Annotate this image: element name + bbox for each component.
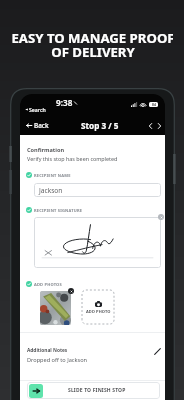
staticText: Search	[29, 106, 46, 113]
staticText: SLIDE TO FINISH STOP	[68, 387, 126, 394]
staticText: ADD PHOTOS	[34, 282, 62, 287]
button[interactable]: Jackson	[34, 183, 161, 197]
staticText: Additional Notes	[27, 347, 68, 354]
staticText: Jackson	[39, 186, 63, 195]
button[interactable]: Previous stop	[146, 120, 155, 132]
button[interactable]: Additional Notes	[20, 347, 165, 364]
staticText: Confirmation	[27, 146, 65, 154]
staticText: 9:38	[56, 97, 73, 108]
button[interactable]: SLIDE TO FINISH STOP	[27, 382, 160, 399]
button[interactable]: Signature pad	[34, 217, 161, 268]
staticText: Back	[34, 121, 49, 130]
button[interactable]: Back	[23, 117, 52, 134]
staticText: Stop 3 / 5	[81, 120, 119, 131]
staticText: Dropped off to Jackson	[27, 356, 87, 364]
button[interactable]: Clear signature	[158, 214, 164, 220]
button[interactable]: Next stop	[155, 120, 164, 132]
staticText: RECIPIENT SIGNATURE	[34, 208, 83, 213]
staticText: Verify this stop has been completed	[27, 155, 118, 162]
staticText: ADD PHOTO	[86, 309, 111, 314]
staticText: 84	[152, 102, 156, 107]
button[interactable]: Remove photo	[68, 288, 74, 294]
button[interactable]: Delivery photo	[40, 291, 71, 325]
button[interactable]: ADD PHOTO	[82, 290, 114, 324]
staticText: EASY TO MANAGE PROOF OF DELIVERY	[11, 29, 173, 61]
staticText: RECIPIENT NAME	[34, 173, 71, 178]
